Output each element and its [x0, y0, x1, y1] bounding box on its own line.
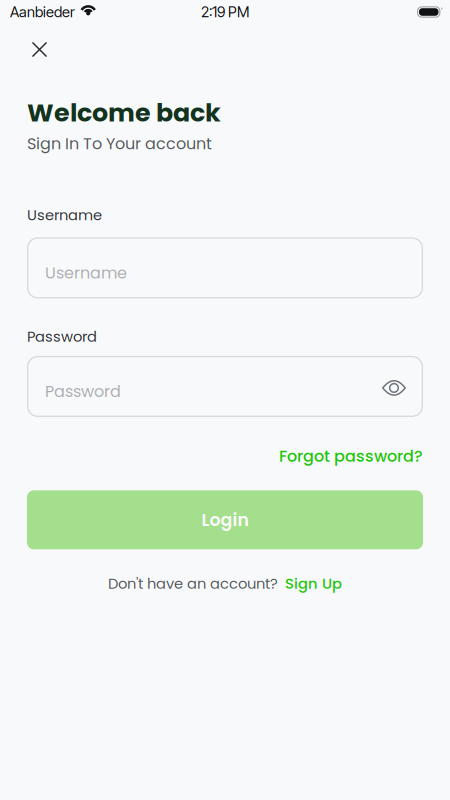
staticText: Welcome back: [27, 95, 221, 130]
staticText: Aanbieder: [10, 3, 75, 21]
staticText: 2:19 PM: [201, 3, 249, 21]
button[interactable]: Close: [22, 32, 57, 67]
button[interactable]: Sign Up: [285, 573, 342, 594]
staticText: Password: [27, 326, 97, 347]
staticText: Username: [45, 262, 127, 284]
button[interactable]: Show password: [382, 378, 406, 395]
staticText: Login: [201, 508, 248, 532]
staticText: Sign Up: [285, 573, 342, 594]
staticText: Forgot password?: [279, 445, 423, 467]
button[interactable]: Forgot password?: [279, 445, 423, 467]
button[interactable]: Login: [27, 490, 423, 549]
staticText: Username: [27, 205, 102, 225]
staticText: Sign In To Your account: [27, 132, 212, 155]
staticText: Don't have an account?: [108, 573, 278, 594]
staticText: Password: [45, 380, 121, 403]
